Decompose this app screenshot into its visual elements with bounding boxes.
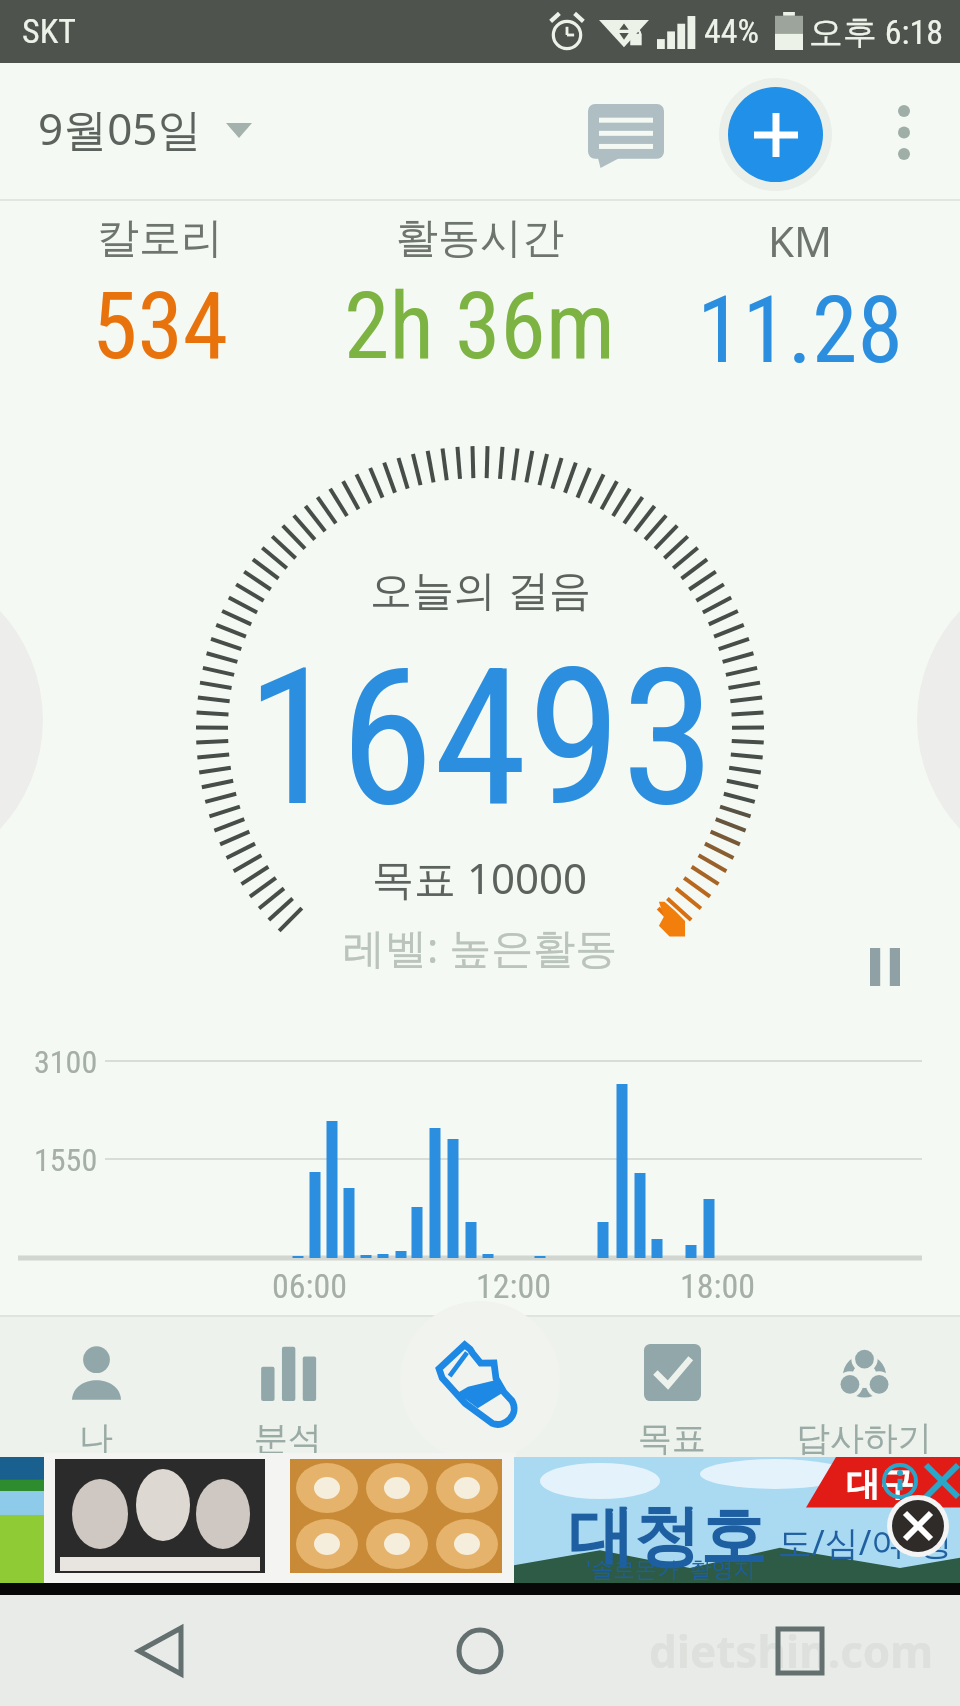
button[interactable]: 9월05일 [24, 86, 266, 170]
staticText: 3100 [34, 1043, 98, 1081]
staticText: 9월05일 [38, 98, 202, 158]
staticText: 18:00 [680, 1266, 756, 1306]
staticText: 대청호 [568, 1495, 766, 1578]
button[interactable]: 분석 [192, 1315, 384, 1458]
staticText: 칼로리 [97, 212, 223, 265]
staticText: SKT [22, 11, 76, 51]
staticText: 활동시간 [396, 212, 564, 265]
staticText: 오후 6:18 [809, 11, 944, 54]
staticText: 44% [704, 11, 760, 51]
staticText: 분석 [254, 1417, 322, 1458]
button[interactable]: Home [440, 1611, 520, 1691]
staticText: 11.28 [697, 277, 903, 385]
staticText: 대구 [846, 1463, 914, 1506]
button[interactable]: 목표 [576, 1315, 768, 1458]
staticText: 레벨: 높은활동 [343, 918, 618, 975]
button[interactable]: KM [640, 212, 960, 385]
button[interactable]: 활동시간 [320, 212, 640, 381]
staticText: 12:00 [476, 1266, 552, 1306]
staticText: 나 [79, 1417, 113, 1458]
staticText: 06:00 [272, 1266, 348, 1306]
button[interactable]: 나 [0, 1315, 192, 1458]
staticText: 16493 [246, 627, 715, 850]
button[interactable]: More options [858, 86, 950, 178]
staticText: 1550 [34, 1141, 98, 1179]
staticText: 목표 [638, 1417, 706, 1458]
staticText: 오늘의 걸음 [370, 560, 591, 617]
button[interactable]: Pause [846, 928, 924, 1006]
button[interactable]: Recents [760, 1611, 840, 1691]
staticText: KM [768, 212, 833, 269]
staticText: 도/심/여/행 [778, 1519, 952, 1565]
staticText: 답사하기 [796, 1417, 932, 1458]
button[interactable]: Add [728, 87, 823, 182]
staticText: 목표 10000 [372, 849, 588, 906]
button[interactable]: Walk [400, 1301, 560, 1461]
button[interactable]: 칼로리 [0, 212, 320, 381]
button[interactable]: 답사하기 [768, 1315, 960, 1458]
button[interactable]: Back [120, 1611, 200, 1691]
staticText: 534 [92, 273, 229, 381]
staticText: dietshin.com [649, 1621, 934, 1681]
button[interactable]: Close ad [892, 1500, 944, 1552]
staticText: '솔로몬가' 촬영지 [586, 1553, 756, 1583]
button[interactable]: Messages [562, 90, 690, 182]
button[interactable]: 대청호 [0, 1457, 960, 1583]
staticText: 2h 36m [344, 273, 616, 381]
